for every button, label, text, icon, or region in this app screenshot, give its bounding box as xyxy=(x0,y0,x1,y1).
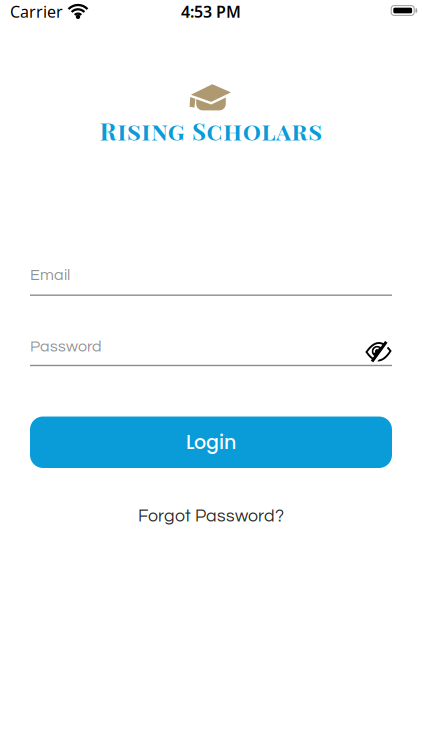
button[interactable]: Forgot Password? xyxy=(0,507,422,525)
button[interactable]: Password xyxy=(30,338,392,366)
staticText: Forgot Password? xyxy=(138,507,284,525)
button[interactable]: Email xyxy=(30,267,392,296)
staticText: Login xyxy=(186,429,236,456)
staticText: Rising Scholars xyxy=(100,114,322,146)
button[interactable]: Login xyxy=(30,416,392,468)
button[interactable] xyxy=(360,336,394,366)
staticText: Email xyxy=(30,267,70,283)
staticText: Carrier xyxy=(10,1,63,22)
staticText: Password xyxy=(30,338,102,355)
staticText: 4:53 PM xyxy=(181,1,241,22)
